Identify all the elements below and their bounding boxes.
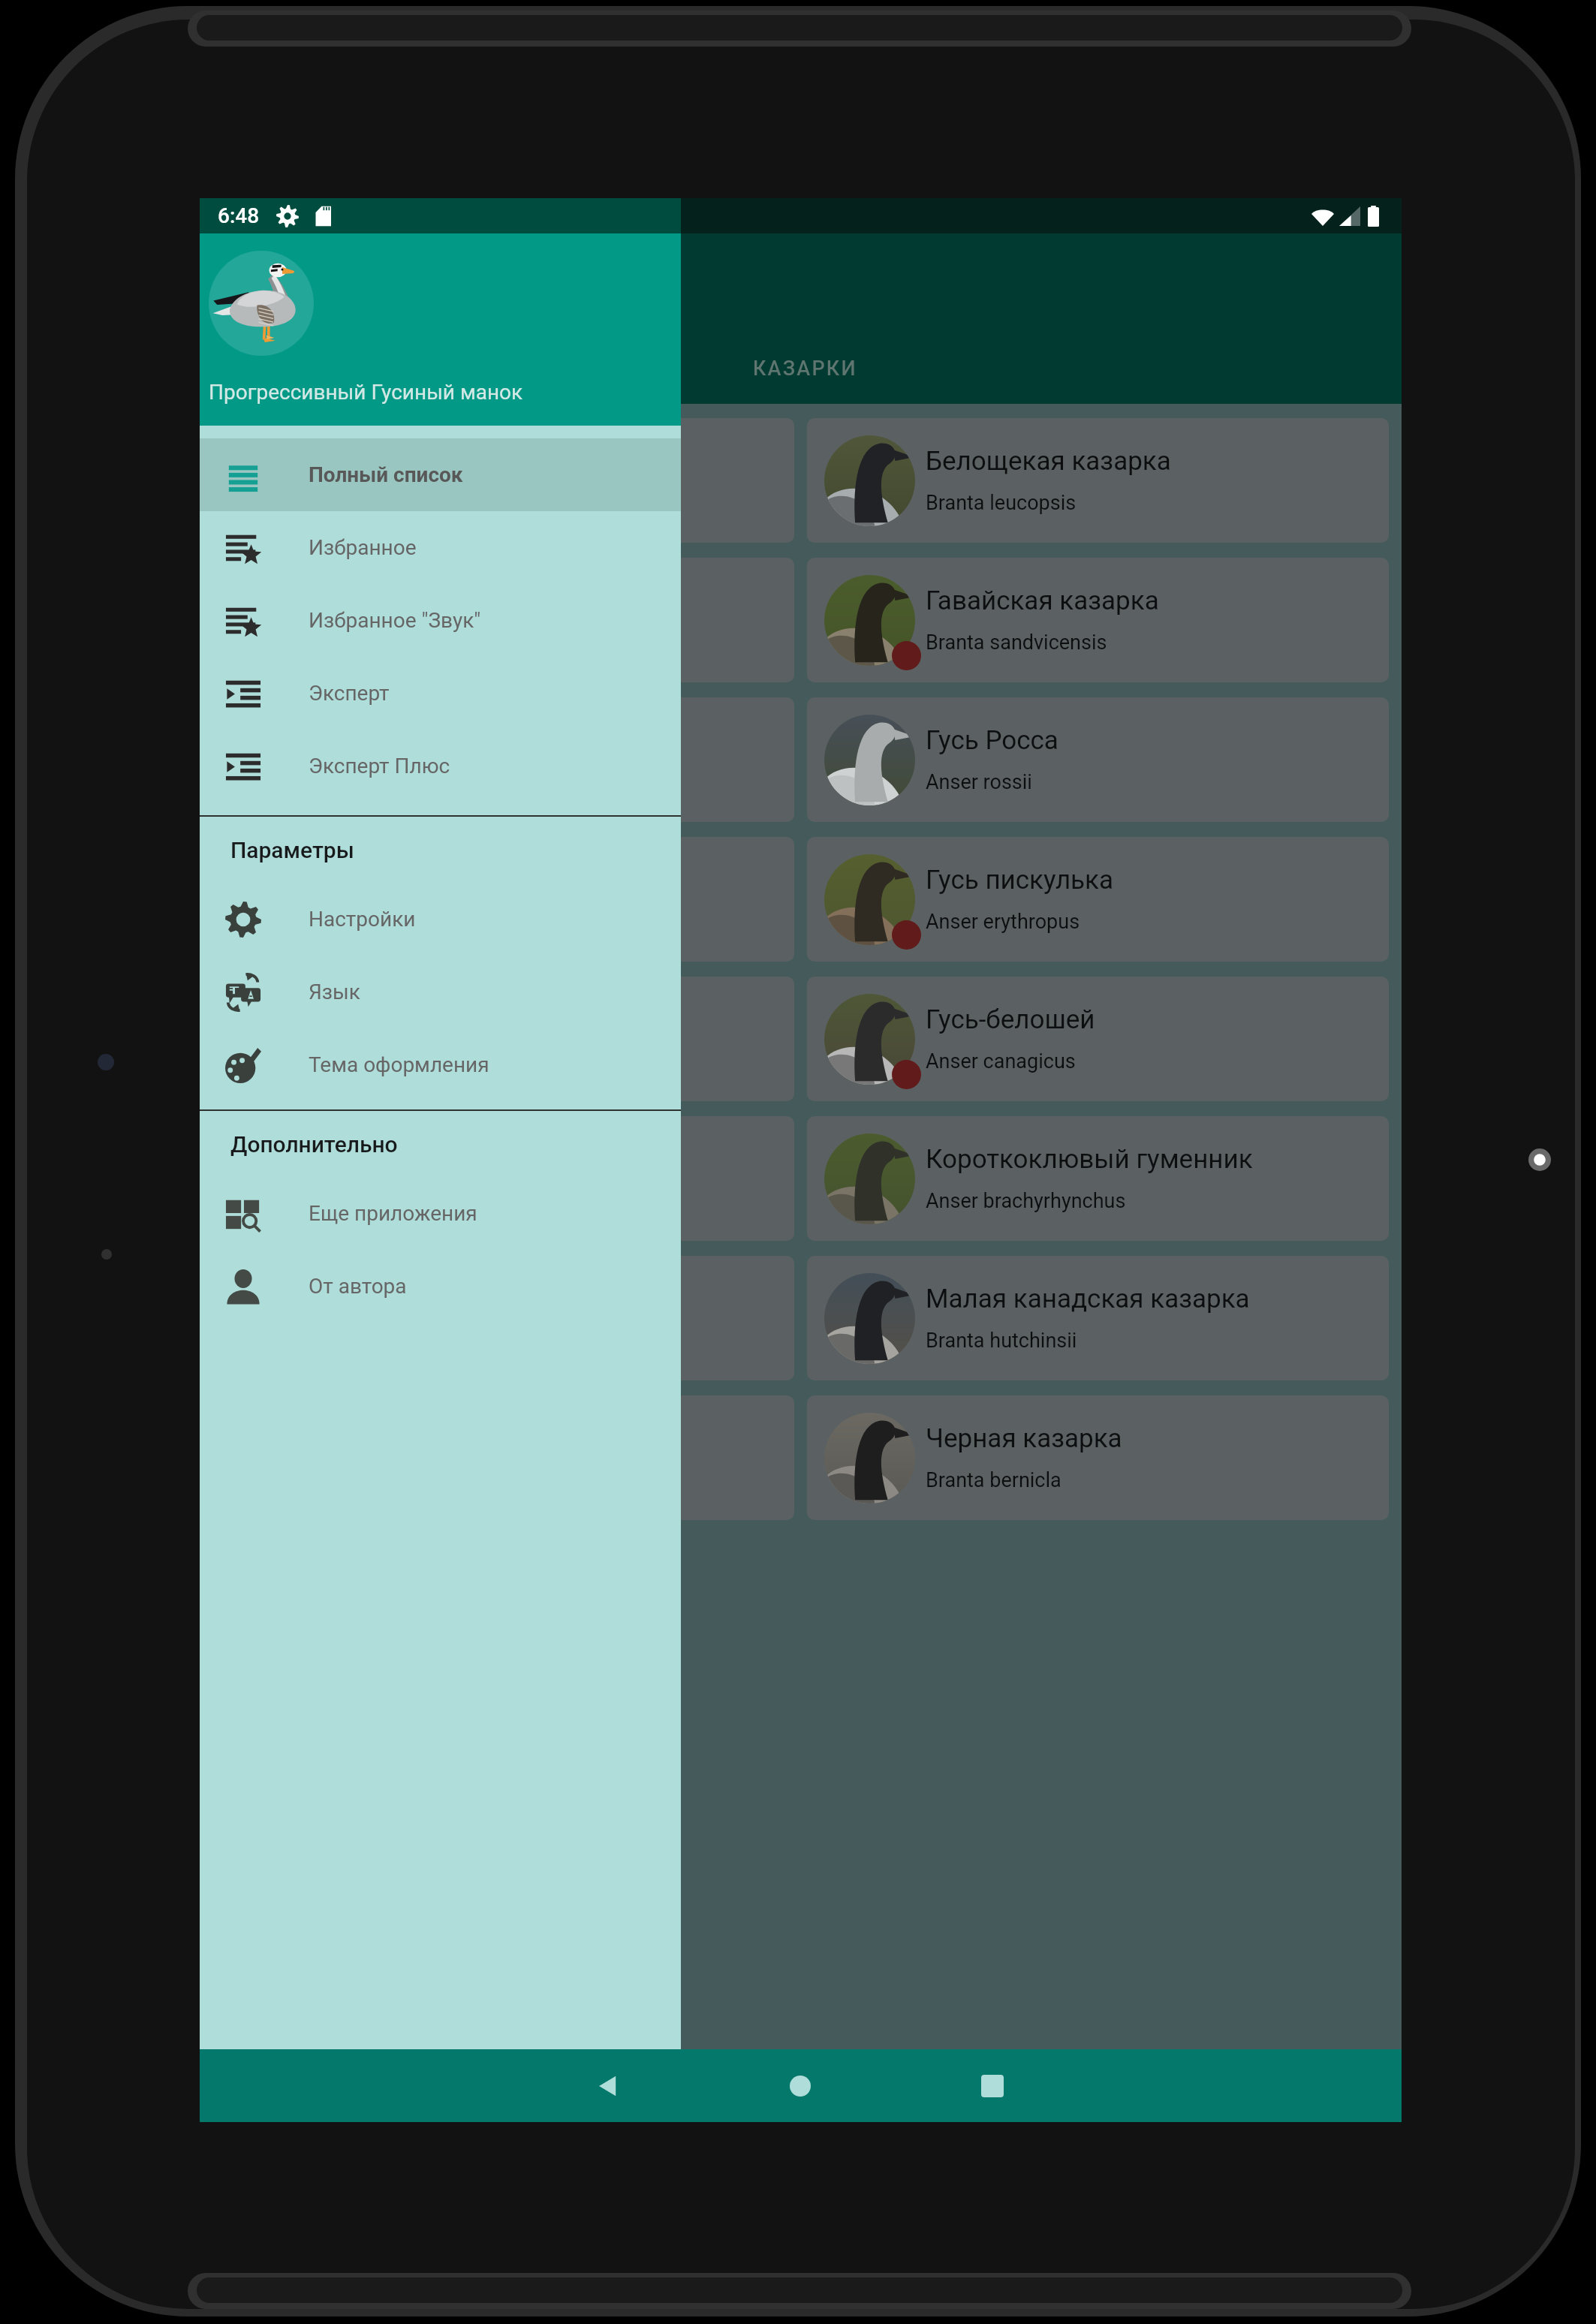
staticText: От автора [309, 1274, 407, 1299]
staticText: Черная казарка [926, 1423, 1122, 1454]
button[interactable]: Серый гусь [212, 1116, 794, 1241]
button[interactable]: Гусь пискулька [807, 837, 1389, 962]
staticText: Branta canadensis [331, 1049, 498, 1073]
button[interactable]: Сухонос [212, 1256, 794, 1380]
button[interactable]: Короткоклювый гуменник [807, 1116, 1389, 1241]
other: Прогрессивный Гусиный манок logo [209, 251, 314, 356]
staticText: Anser brachyrhynchus [926, 1189, 1126, 1213]
staticText: Branta sandvicensis [926, 631, 1107, 655]
staticText: Anser fabalis [331, 910, 450, 934]
staticText: Branta bernicla [926, 1468, 1061, 1492]
button[interactable]: Еще приложения [200, 1177, 681, 1250]
staticText: Эксперт Плюс [309, 754, 450, 778]
staticText: Белый гусь [331, 586, 471, 616]
button[interactable]: Гусь Росса [807, 697, 1389, 822]
staticText: Сухонос [331, 1284, 432, 1314]
button[interactable]: Белолобый гусь [212, 418, 794, 543]
staticText: 6:48 [218, 203, 260, 228]
button[interactable]: Тема оформления [200, 1028, 681, 1101]
button[interactable]: От автора [200, 1250, 681, 1323]
staticText: Anser rossii [926, 770, 1032, 794]
staticText: Anser erythropus [926, 910, 1080, 934]
staticText: Настройки [309, 907, 416, 932]
button[interactable]: Эксперт Плюс [200, 730, 681, 802]
staticText: Белощекая казарка [926, 446, 1171, 477]
button[interactable]: Белощекая казарка [807, 418, 1389, 543]
staticText: Anser canagicus [926, 1049, 1076, 1073]
button[interactable]: Гавайская казарка [807, 558, 1389, 682]
button[interactable]: Белый гусь [212, 558, 794, 682]
button[interactable]: Черная казарка [807, 1395, 1389, 1520]
button[interactable]: Эксперт [200, 657, 681, 730]
staticText: Тема оформления [309, 1052, 489, 1077]
staticText: Anser anser [331, 1189, 439, 1213]
staticText: Гусь пискулька [926, 865, 1114, 896]
staticText: Белолобый гусь [331, 446, 530, 477]
staticText: Branta leucopsis [926, 491, 1077, 515]
staticText: Гавайская казарка [926, 586, 1159, 616]
staticText: Anser indicus [331, 770, 453, 794]
button[interactable]: Канадская казарка [212, 977, 794, 1101]
button[interactable]: Настройки [200, 883, 681, 956]
staticText: Эксперт [309, 681, 390, 706]
staticText: КАЗАРКИ [753, 357, 857, 381]
staticText: Параметры [230, 837, 354, 863]
button[interactable]: Прогрессивный Гусиный манок logo [200, 233, 681, 426]
staticText: Короткоклювый гуменник [926, 1144, 1253, 1175]
staticText: Anser albifrons [331, 491, 468, 515]
staticText: Избранное [309, 535, 417, 560]
staticText: Branta hutchinsii [926, 1329, 1077, 1353]
button[interactable]: Горный гусь [212, 697, 794, 822]
button[interactable]: Черная казарка [212, 1395, 794, 1520]
staticText: Anser caerulescens [331, 631, 508, 655]
staticText: Избранное "Звук" [309, 608, 481, 633]
staticText: Гусь-белошей [926, 1004, 1095, 1035]
button[interactable]: Home [751, 2049, 849, 2122]
button[interactable]: Избранное [200, 511, 681, 584]
button[interactable]: Back [559, 2049, 657, 2122]
button[interactable]: Полный список [200, 438, 681, 511]
staticText: Язык [309, 980, 360, 1004]
staticText: Прогрессивный Гусиный манок [209, 380, 523, 405]
button[interactable]: Recents [944, 2049, 1041, 2122]
staticText: Серый гусь [331, 1144, 471, 1175]
staticText: Малая канадская казарка [926, 1284, 1250, 1314]
button[interactable]: Язык [200, 956, 681, 1028]
button[interactable]: Избранное "Звук" [200, 584, 681, 657]
staticText: Еще приложения [309, 1201, 477, 1226]
button[interactable]: Гуменник [212, 837, 794, 962]
staticText: Дополнительно [230, 1131, 398, 1157]
button[interactable]: Малая канадская казарка [807, 1256, 1389, 1380]
staticText: Гусь Росса [926, 725, 1058, 756]
button[interactable]: Гусь-белошей [807, 977, 1389, 1101]
staticText: Полный список [309, 462, 463, 487]
